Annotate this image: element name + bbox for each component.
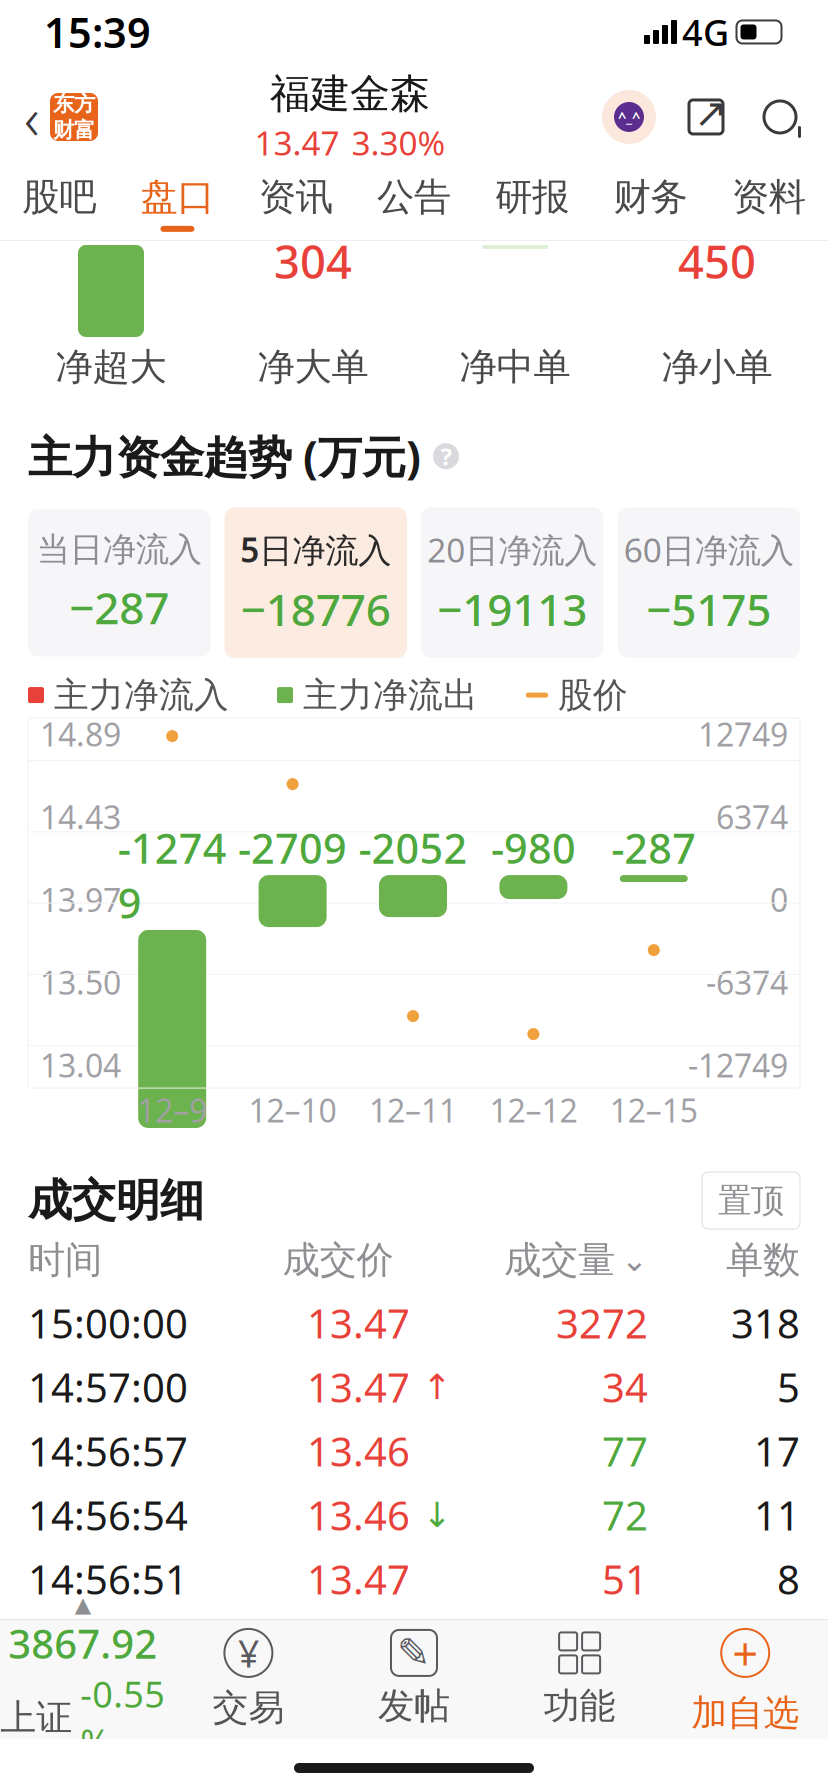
staticText: 77 [602,1424,648,1478]
staticText: -0.55% [80,1670,165,1765]
staticText: 主力净流入 [54,674,229,716]
button[interactable]: 盘口 [118,162,237,244]
staticText: 72 [602,1488,648,1542]
staticText: −18776 [241,580,391,638]
staticText: 34 [602,1360,648,1414]
staticText: 资讯 [259,174,333,220]
staticText: 13.47 [254,120,339,165]
button[interactable]: ¥ [166,1628,331,1730]
staticText: 加自选 [691,1691,799,1735]
staticText: 交易 [212,1686,284,1730]
staticText: 置顶 [718,1180,784,1221]
staticText: 当日净流入 [37,529,202,570]
staticText: 净中单 [459,344,570,390]
button[interactable]: ▲ [0,1593,166,1765]
staticText: 研报 [495,174,569,220]
button[interactable]: Back [0,78,98,156]
staticText: ⌄ [621,1242,648,1278]
staticText: 股价 [558,674,628,716]
button[interactable]: 当日净流入 [28,509,210,656]
staticText: 净小单 [661,344,772,390]
staticText: 成交明细 [28,1173,204,1227]
staticText: 14.43 [40,796,121,838]
button[interactable]: 5日净流入 [224,507,407,658]
staticText: 公告 [377,174,451,220]
button[interactable]: + [662,1623,828,1735]
button[interactable]: 资料 [710,162,828,244]
staticText: 12–15 [610,1089,698,1131]
staticText: 功能 [544,1684,616,1728]
staticText: 财务 [614,174,688,220]
staticText: 主力净流出 [303,674,478,716]
staticText: 12–11 [369,1089,457,1131]
staticText: 股吧 [22,174,96,220]
staticText: 5日净流入 [240,527,391,572]
staticText: 17 [754,1424,800,1478]
staticText: 3.30% [351,120,445,165]
staticText: 成交价 [282,1237,393,1283]
staticText: -6374 [706,961,788,1004]
staticText: 12–12 [489,1089,577,1131]
staticText: -2052 [358,820,467,875]
staticText: 东方 [53,91,95,117]
button[interactable]: 股吧 [0,162,118,244]
staticText: 13.97 [40,878,121,921]
staticText: ▲ [75,1593,91,1617]
staticText: 11 [754,1488,800,1542]
staticText: ^_^ [618,107,640,127]
button[interactable]: 20日净流入 [421,507,603,658]
button[interactable]: 公告 [355,162,473,244]
staticText: -2709 [238,820,347,875]
staticText: 资料 [732,174,806,220]
button[interactable]: ✎ [331,1630,497,1728]
staticText: ↓ [422,1495,451,1535]
staticText: 3272 [556,1296,648,1350]
staticText: 13.47 [307,1552,410,1606]
staticText: 12749 [698,713,788,755]
button[interactable]: 60日净流入 [617,507,800,658]
staticText: −287 [69,578,169,636]
staticText: ✎ [397,1630,431,1676]
staticText: 15:39 [44,4,151,59]
staticText: -12749 [688,1044,788,1086]
staticText: 13.47 [307,1360,410,1414]
staticText: 成交量 [504,1237,615,1283]
staticText: 盘口 [140,174,214,220]
button[interactable]: AI assistant [602,90,656,144]
staticText: ↑ [422,1367,451,1407]
staticText: 12–9 [137,1089,207,1131]
button[interactable]: Help [433,440,459,472]
button[interactable]: 财务 [591,162,710,244]
staticText: 3867.92 [8,1617,157,1670]
staticText: 13.47 [307,1296,410,1350]
staticText: ¥ [238,1628,259,1678]
button[interactable]: 置顶 [702,1172,800,1229]
staticText: 60日净流入 [624,527,794,572]
button[interactable]: Share [682,93,730,141]
staticText: 12–10 [249,1089,337,1131]
staticText: 14:56:54 [28,1488,188,1542]
staticText: 13.46 [307,1488,410,1542]
staticText: 5 [777,1360,800,1414]
staticText: 0 [770,878,788,921]
staticText: 8 [777,1552,800,1606]
staticText: 14:56:57 [28,1424,188,1478]
button[interactable]: Search [756,93,804,141]
staticText: 15:00:00 [28,1296,188,1350]
staticText: 318 [731,1296,800,1350]
staticText: −19113 [437,580,587,638]
staticText: 20日净流入 [427,527,597,572]
button[interactable]: 研报 [473,162,591,244]
staticText: 13.04 [40,1044,121,1086]
staticText: 6374 [716,796,788,838]
button[interactable]: 资讯 [237,162,355,244]
staticText: 净超大 [55,344,166,390]
staticText: 14:57:00 [28,1360,188,1414]
staticText: 14.89 [40,713,121,755]
staticText: 时间 [28,1237,102,1283]
staticText: 450 [678,231,756,291]
button[interactable]: 功能 [497,1630,662,1728]
staticText: 主力资金趋势 (万元) [28,427,421,485]
staticText: ↗ [694,90,728,136]
staticText: 上证 [0,1696,72,1740]
